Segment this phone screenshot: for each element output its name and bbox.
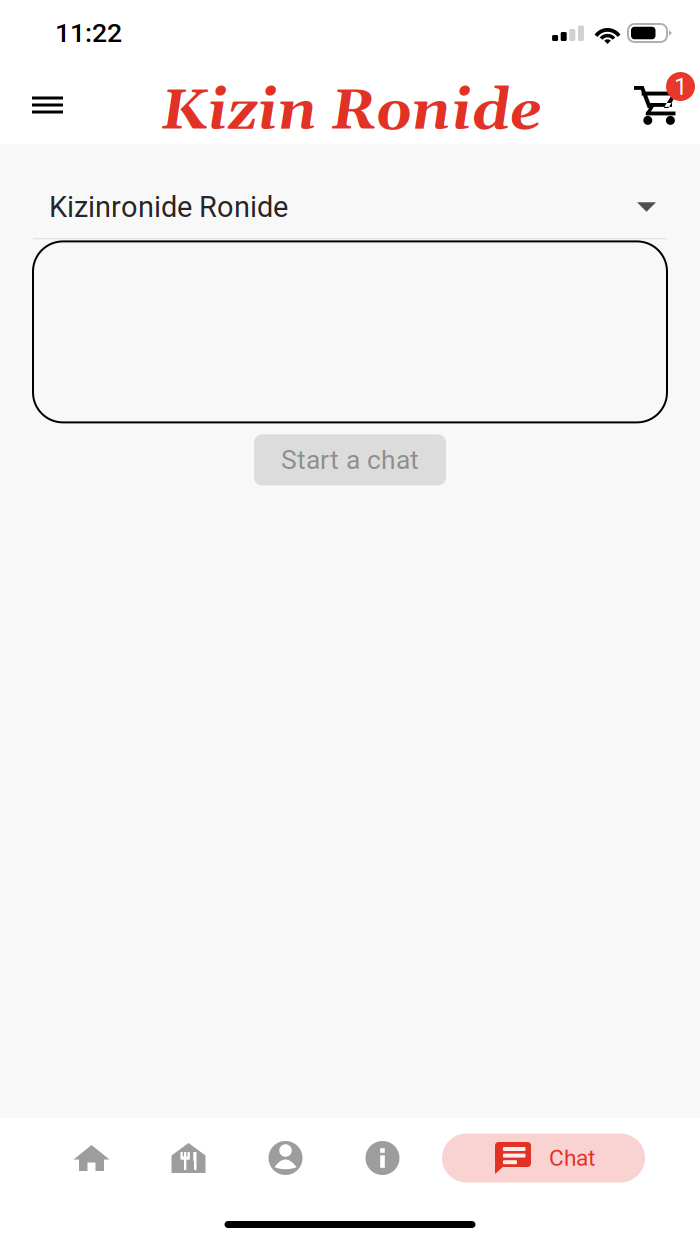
staticText: Start a chat bbox=[281, 444, 419, 475]
button[interactable]: Start a chat bbox=[254, 434, 446, 485]
staticText: 1 bbox=[674, 72, 687, 100]
button[interactable]: Home bbox=[43, 1127, 140, 1189]
staticText: 11:22 bbox=[55, 17, 122, 49]
button[interactable]: Account bbox=[237, 1127, 334, 1189]
button[interactable]: Chat bbox=[442, 1133, 645, 1182]
staticText: Kizin Ronide bbox=[161, 76, 542, 148]
button[interactable]: Restaurants bbox=[140, 1127, 237, 1189]
button[interactable]: Message bbox=[33, 241, 667, 422]
staticText: Kizinronide Ronide bbox=[49, 190, 288, 224]
button[interactable]: Kizinronide Ronide bbox=[33, 176, 667, 238]
button[interactable]: Cart, 1 item bbox=[629, 76, 695, 134]
staticText: Chat bbox=[549, 1145, 595, 1171]
button[interactable]: Menu bbox=[32, 76, 84, 134]
button[interactable]: Info bbox=[334, 1127, 431, 1189]
